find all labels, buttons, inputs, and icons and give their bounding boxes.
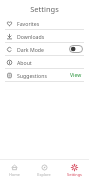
staticText: View <box>70 72 82 79</box>
staticText: Home <box>9 172 20 177</box>
button[interactable]: Suggestions <box>0 69 89 81</box>
button[interactable]: Settings <box>59 160 89 180</box>
staticText: Settings <box>67 172 82 177</box>
staticText: About <box>17 59 32 66</box>
staticText: Settings <box>30 4 59 14</box>
staticText: Downloads <box>17 33 45 40</box>
button[interactable]: View <box>69 71 83 80</box>
button[interactable]: Toggle dark mode <box>69 45 83 53</box>
button[interactable]: About <box>0 56 89 68</box>
staticText: Explore <box>37 172 51 177</box>
staticText: Dark Mode <box>17 46 44 53</box>
button[interactable]: Downloads <box>0 30 89 42</box>
button[interactable]: Dark Mode <box>0 43 89 55</box>
button[interactable]: Home <box>0 160 29 180</box>
staticText: Favorites <box>17 20 40 27</box>
staticText: Suggestions <box>17 72 47 79</box>
button[interactable]: Explore <box>29 160 59 180</box>
button[interactable]: Favorites <box>0 17 89 29</box>
